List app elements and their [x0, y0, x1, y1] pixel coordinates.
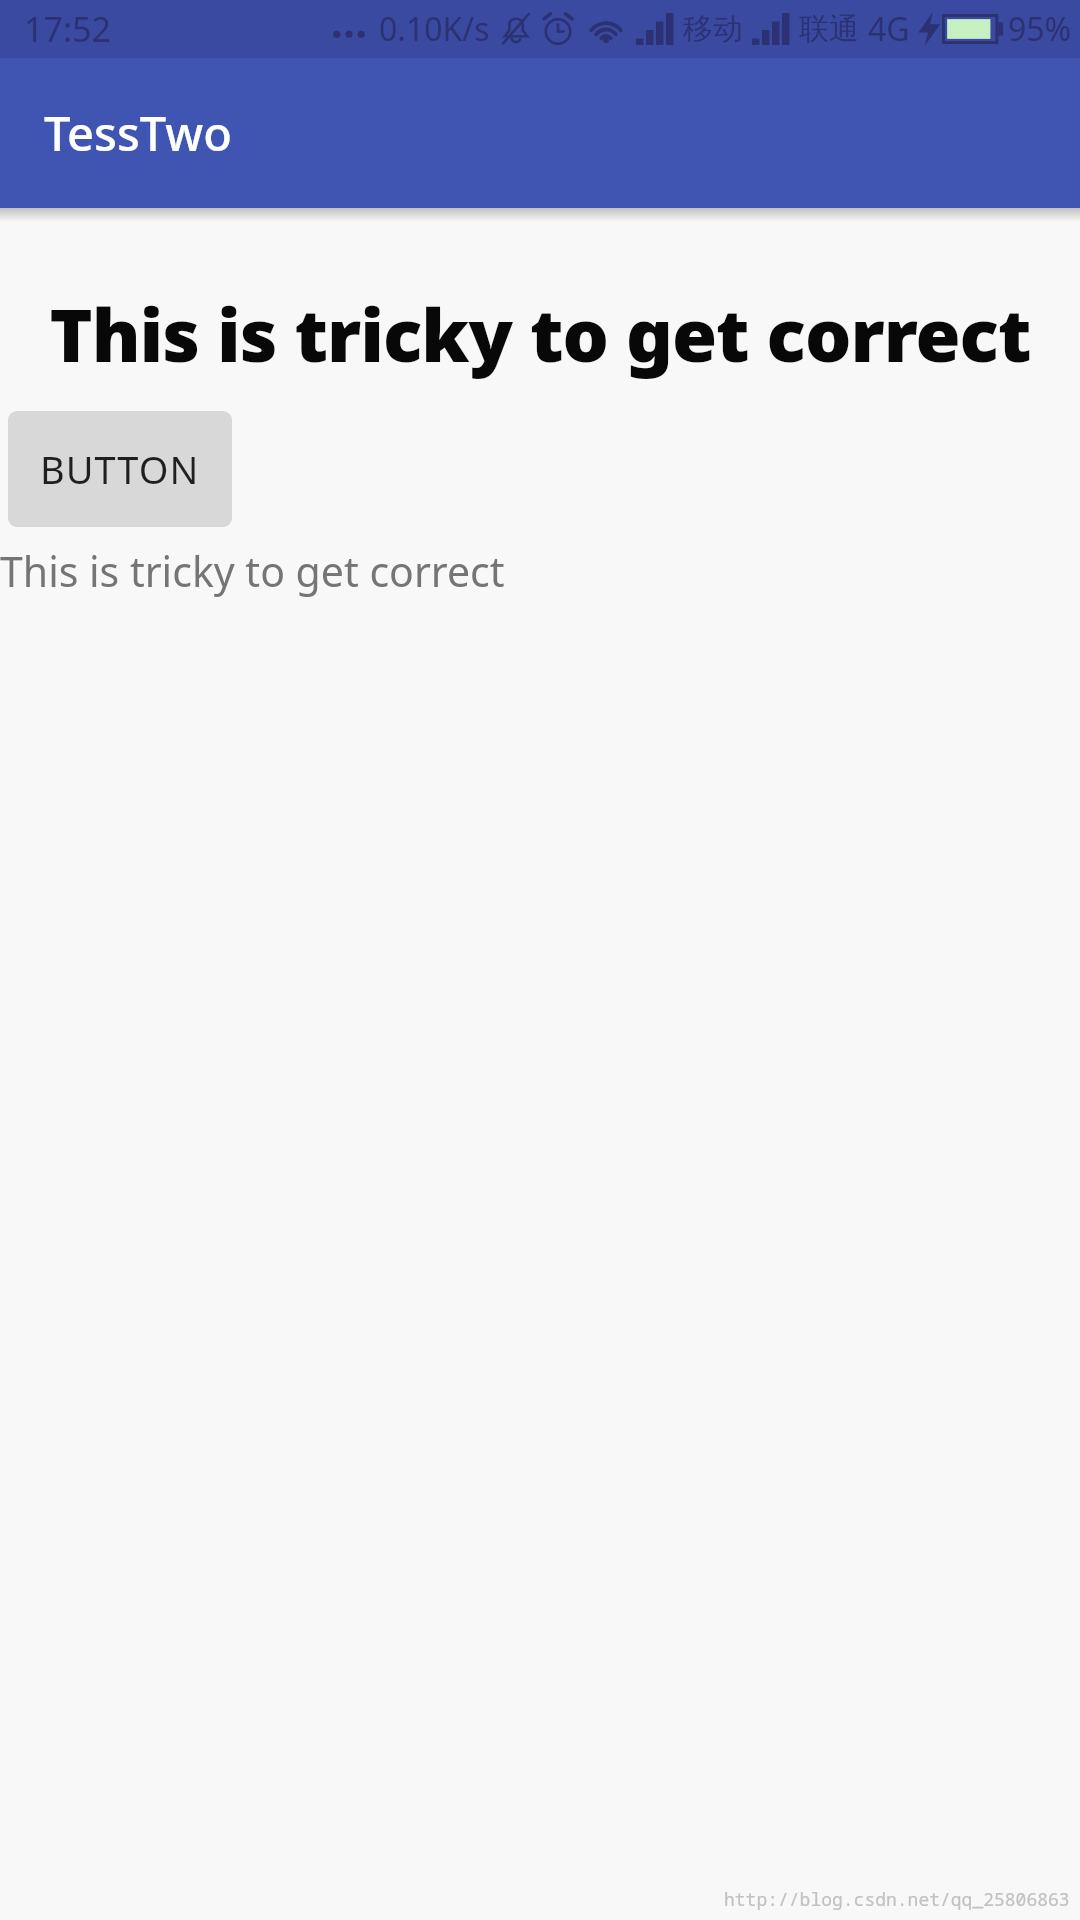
- staticText: 17:52: [24, 6, 111, 52]
- staticText: 联通: [799, 10, 859, 48]
- staticText: BUTTON: [40, 443, 200, 495]
- staticText: This is tricky to get correct: [14, 284, 1066, 383]
- staticText: 0.10K/s: [379, 7, 490, 51]
- staticText: 移动: [683, 10, 743, 48]
- staticText: 95%: [1008, 7, 1072, 51]
- staticText: TessTwo: [44, 101, 232, 165]
- button[interactable]: BUTTON: [8, 411, 232, 527]
- staticText: This is tricky to get correct: [0, 543, 505, 599]
- staticText: 4G: [868, 7, 910, 51]
- staticText: http://blog.csdn.net/qq_25806863: [724, 1887, 1070, 1912]
